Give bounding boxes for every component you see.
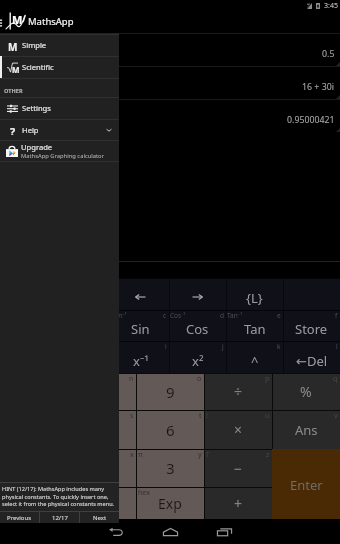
staticText: i (165, 342, 167, 351)
staticText: ^ (251, 352, 259, 370)
button[interactable]: p (204, 373, 272, 410)
button[interactable]: Recent apps (206, 519, 242, 544)
staticText: n (129, 374, 134, 384)
staticText: hex (138, 488, 150, 498)
staticText: Upgrade (21, 142, 53, 152)
staticText: v (334, 411, 338, 421)
staticText: Previous (7, 514, 32, 522)
button[interactable]: + (204, 487, 272, 520)
button[interactable]: . (68, 487, 136, 520)
staticText: OTHER (4, 87, 23, 95)
staticText: x (130, 450, 134, 460)
button[interactable] (112, 278, 169, 310)
staticText: l (336, 342, 338, 351)
staticText: 0.95000421 (287, 114, 335, 126)
button[interactable]: i (112, 341, 169, 373)
button[interactable]: Settings (0, 97, 119, 119)
staticText: HINT (12/17): MathsApp includes many phy… (2, 485, 115, 507)
button[interactable]: Enter (272, 449, 340, 521)
button[interactable]: t (136, 410, 204, 449)
staticText: 0.5 (322, 48, 335, 60)
staticText: 0 (30, 494, 39, 514)
button[interactable]: o (136, 373, 204, 410)
staticText: d (220, 311, 224, 320)
button[interactable]: Cos⁻¹ (169, 310, 226, 341)
button[interactable]: 0 (0, 487, 68, 520)
button[interactable]: 0.95000421 (0, 99, 340, 132)
button[interactable]: Open navigation drawer (0, 12, 8, 33)
button[interactable]: Sin⁻¹ (112, 310, 169, 341)
staticText: Cos (186, 320, 209, 338)
button[interactable]: l (283, 341, 340, 373)
staticText: x⁻¹ (133, 352, 149, 370)
button[interactable]: s (68, 410, 136, 449)
button[interactable]: w (0, 449, 68, 487)
staticText: 3 (166, 458, 175, 478)
staticText: k (277, 342, 281, 351)
button[interactable]: ! (204, 410, 272, 449)
button[interactable]: {L} (226, 278, 283, 310)
button[interactable]: Γ (204, 449, 272, 487)
button[interactable] (169, 278, 226, 310)
staticText: t (199, 411, 202, 421)
staticText: M (8, 40, 18, 51)
button[interactable]: ? (0, 119, 119, 140)
staticText: Next (93, 514, 107, 522)
staticText: u (265, 411, 270, 421)
staticText: s (130, 411, 134, 421)
staticText: Sin (131, 320, 150, 338)
staticText: Sin⁻¹ (113, 311, 127, 320)
staticText: {L} (246, 289, 263, 307)
button[interactable]: hex (136, 487, 204, 520)
staticText: ←Del (296, 352, 328, 370)
button[interactable]: 16 + 30i (0, 66, 340, 99)
staticText: M (12, 64, 20, 75)
button[interactable]: v (272, 410, 340, 449)
staticText: MathsApp Graphing calculator (21, 152, 104, 160)
staticText: x² (192, 352, 204, 370)
button[interactable]: Tan⁻¹ (226, 310, 283, 341)
button[interactable]: Upgrade (0, 140, 119, 161)
staticText: f (335, 311, 338, 320)
button[interactable]: M (0, 34, 119, 56)
staticText: ? (10, 124, 16, 135)
button[interactable]: Next (80, 512, 119, 523)
button[interactable]: k (226, 341, 283, 373)
staticText: o (197, 374, 202, 384)
staticText: 9 (166, 382, 175, 402)
button[interactable]: 0.5 (0, 33, 340, 66)
button[interactable]: j (169, 341, 226, 373)
button[interactable]: n (68, 373, 136, 410)
button[interactable]: Home (152, 519, 188, 544)
staticText: Simple (22, 40, 47, 50)
staticText: e (277, 311, 281, 320)
button[interactable]: Previous (0, 512, 39, 523)
button[interactable]: x (68, 449, 136, 487)
button[interactable]: M (0, 56, 119, 78)
button[interactable]: π (136, 449, 204, 487)
button[interactable]: q (272, 373, 340, 410)
button[interactable]: f (283, 310, 340, 341)
staticText: M (12, 12, 23, 27)
staticText: 16 + 30i (302, 81, 335, 93)
button[interactable]: Back (98, 519, 134, 544)
